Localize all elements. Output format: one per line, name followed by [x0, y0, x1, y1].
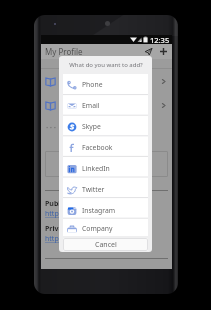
- staticText: Skype: [82, 122, 101, 131]
- button[interactable]: Company: [63, 221, 148, 236]
- button[interactable]: Facebook: [63, 137, 148, 158]
- button[interactable]: [41, 69, 172, 93]
- staticText: Instagram: [82, 206, 116, 215]
- staticText: LinkedIn: [82, 164, 110, 173]
- button[interactable]: Instagram: [63, 200, 148, 221]
- staticText: Facebook: [82, 143, 113, 152]
- staticText: What do you want to add?: [69, 61, 143, 69]
- staticText: http://example.com: [45, 234, 110, 244]
- staticText: • • •: [46, 124, 56, 132]
- staticText: Email: [82, 101, 100, 110]
- staticText: Contact: [97, 70, 116, 77]
- button[interactable]: [41, 93, 172, 117]
- button[interactable]: Phone: [63, 74, 148, 95]
- button[interactable]: Cancel: [63, 238, 148, 251]
- staticText: http://example.com: [45, 209, 110, 219]
- staticText: Company: [82, 224, 113, 233]
- button[interactable]: Email: [63, 95, 148, 116]
- button[interactable]: Send: [141, 44, 156, 59]
- staticText: Public: [45, 199, 67, 209]
- staticText: Cancel: [95, 240, 117, 250]
- staticText: My Profile: [45, 46, 83, 57]
- button[interactable]: Skype: [63, 116, 148, 137]
- staticText: Twitter: [82, 185, 105, 194]
- staticText: Private: [45, 224, 70, 234]
- button[interactable]: LinkedIn: [63, 158, 148, 179]
- button[interactable]: Add: [156, 44, 171, 59]
- button[interactable]: Twitter: [63, 179, 148, 200]
- staticText: Phone: [82, 80, 103, 89]
- staticText: 12:35: [150, 35, 170, 44]
